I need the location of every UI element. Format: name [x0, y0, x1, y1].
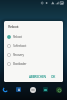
button[interactable]: Camera	[56, 87, 62, 93]
button[interactable]: Recovery	[4, 50, 63, 59]
staticText: Reboot	[8, 24, 19, 29]
staticText: ABBRECHEN	[29, 75, 46, 79]
button[interactable]: ABBRECHEN	[27, 73, 48, 81]
button[interactable]: Bootloader	[4, 59, 63, 68]
staticText: Reboot	[13, 35, 22, 39]
button[interactable]: All apps	[30, 87, 36, 93]
staticText: Recovery	[13, 53, 24, 57]
button[interactable]: Messages	[43, 87, 48, 92]
button[interactable]: OK	[49, 73, 58, 81]
button[interactable]: Reboot	[4, 32, 63, 41]
staticText: Bootloader	[13, 62, 27, 66]
staticText: OK	[51, 75, 56, 79]
button[interactable]: Phone	[2, 86, 9, 93]
button[interactable]: Soft reboot	[4, 41, 63, 50]
button[interactable]: Contacts	[16, 87, 21, 92]
staticText: Soft reboot	[13, 44, 26, 48]
